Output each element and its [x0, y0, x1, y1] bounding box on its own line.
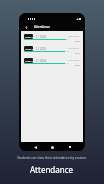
button[interactable]: Recent apps — [66, 143, 74, 151]
staticText: 62% — [75, 51, 80, 54]
staticText: Class C — [25, 59, 33, 62]
staticText: 1 / 2025 — [36, 47, 47, 51]
button[interactable]: Class A — [21, 33, 83, 45]
staticText: 88% — [75, 63, 80, 66]
button[interactable]: Back — [23, 24, 29, 30]
staticText: 74% — [75, 39, 80, 42]
staticText: Attendance — [68, 47, 80, 50]
button[interactable]: Class B — [21, 45, 83, 57]
button[interactable]: Class C — [21, 57, 83, 69]
staticText: Attendance — [34, 25, 50, 29]
staticText: 1 / 2025 — [36, 35, 47, 39]
staticText: Students can view their attendance by se… — [17, 156, 87, 160]
staticText: Attendance — [68, 35, 80, 38]
staticText: Class B — [25, 47, 33, 50]
button[interactable]: Back — [31, 143, 39, 151]
button[interactable]: Home — [48, 143, 56, 151]
staticText: Class A — [25, 35, 33, 38]
staticText: Attendance — [30, 164, 74, 175]
staticText: 2 / 2024 — [36, 59, 47, 63]
staticText: Attendance — [68, 59, 80, 62]
